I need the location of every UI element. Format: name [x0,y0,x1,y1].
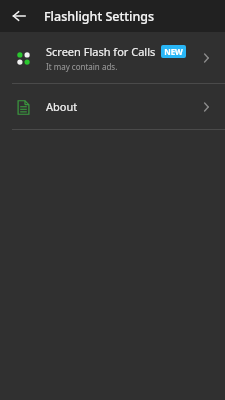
staticText: Flashlight Settings [44,8,155,25]
staticText: Screen Flash for Calls [46,44,156,59]
staticText: It may contain ads. [46,61,118,72]
staticText: About [46,99,196,114]
staticText: NEW [164,46,183,57]
button[interactable]: Screen Flash for Calls [0,32,225,83]
button[interactable]: Back [7,4,31,28]
button[interactable]: About [0,84,225,129]
